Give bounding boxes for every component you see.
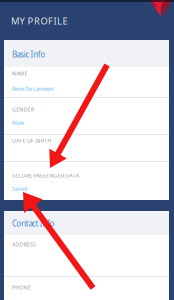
staticText: MY PROFILE [11, 15, 67, 27]
button[interactable]: DATE OF BIRTH [4, 135, 169, 162]
button[interactable]: PHONE [4, 277, 169, 300]
staticText: NAME [12, 70, 27, 77]
staticText: Male [12, 119, 24, 126]
button[interactable]: ADDRESS [4, 235, 169, 277]
staticText: GENDER [12, 106, 34, 113]
staticText: Basic Info [12, 49, 45, 60]
staticText: Contact Info [12, 218, 55, 229]
button[interactable]: NAME [4, 67, 169, 98]
button[interactable]: GENDER [4, 98, 169, 135]
staticText: DATE OF BIRTH [12, 137, 51, 144]
button[interactable]: SECURE PASSENGER DATA [4, 162, 169, 200]
staticText: ADDRESS [12, 241, 36, 248]
staticText: SECURE PASSENGER DATA [12, 172, 79, 179]
staticText: Saved [12, 185, 27, 192]
staticText: Rene De Lambert [12, 85, 54, 92]
staticText: PHONE [12, 284, 31, 291]
